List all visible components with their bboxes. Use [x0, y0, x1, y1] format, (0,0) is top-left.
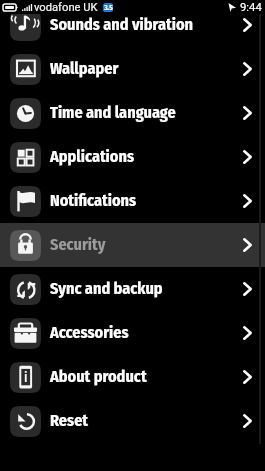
button[interactable]: Sounds and vibration	[0, 3, 265, 47]
other: Signal strength	[22, 4, 33, 11]
staticText: Security	[50, 235, 106, 254]
staticText: Reset	[50, 411, 89, 430]
staticText: Applications	[50, 147, 135, 166]
staticText: 9:44	[240, 1, 262, 14]
staticText: About product	[50, 367, 147, 386]
staticText: vodafone UK	[34, 1, 98, 14]
staticText: Wallpaper	[50, 59, 119, 78]
button[interactable]: About product	[0, 355, 265, 399]
button[interactable]: Time and language	[0, 91, 265, 135]
staticText: Sync and backup	[50, 279, 163, 298]
staticText: 3.5	[104, 3, 113, 12]
button[interactable]: Wallpaper	[0, 47, 265, 91]
button[interactable]: Reset	[0, 399, 265, 443]
staticText: Sounds and vibration	[50, 15, 194, 34]
button[interactable]: Sync and backup	[0, 267, 265, 311]
button[interactable]: Accessories	[0, 311, 265, 355]
staticText: Accessories	[50, 323, 129, 342]
other: Battery	[3, 4, 18, 11]
staticText: Notifications	[50, 191, 137, 210]
button[interactable]: Security	[0, 223, 265, 267]
button[interactable]: Applications	[0, 135, 265, 179]
staticText: Time and language	[50, 103, 176, 122]
other: Location	[228, 3, 236, 12]
button[interactable]: Notifications	[0, 179, 265, 223]
